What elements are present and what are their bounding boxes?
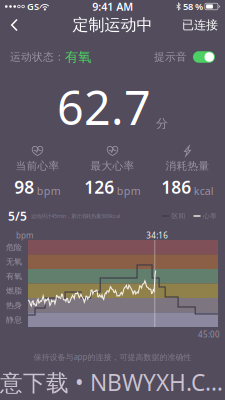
staticText: 有氧 <box>6 271 22 281</box>
staticText: 心率 <box>203 212 217 220</box>
staticText: 45:00 <box>198 329 220 340</box>
staticText: 提示音 <box>154 50 187 63</box>
staticText: 运动共计45min，累计消耗热量300kcal <box>31 212 120 220</box>
staticText: 定制运动中 <box>72 15 152 35</box>
staticText: 热身 <box>6 300 22 310</box>
staticText: GS <box>27 0 39 13</box>
staticText: 最大心率 <box>90 159 134 172</box>
button[interactable]: 已连接 <box>175 13 225 37</box>
staticText: 分 <box>156 116 168 131</box>
staticText: 126 <box>84 175 114 198</box>
staticText: 当前心率 <box>15 159 59 172</box>
staticText: bpm <box>37 184 61 198</box>
staticText: 保持设备与app的连接，可提高数据的准确性 <box>33 352 191 362</box>
staticText: 有氧 <box>65 49 91 65</box>
staticText: 静息 <box>6 315 22 325</box>
staticText: kcal <box>194 184 214 198</box>
staticText: 已连接 <box>182 18 218 32</box>
staticText: 98 <box>14 175 34 198</box>
staticText: 5/5 <box>8 208 27 224</box>
staticText: 区间 <box>171 212 185 220</box>
staticText: bpm <box>117 184 141 198</box>
staticText: 34:16 <box>146 230 168 241</box>
staticText: 9:41 AM <box>92 0 133 14</box>
button[interactable]: 提示音开关 <box>193 51 215 63</box>
staticText: 运动状态： <box>10 50 65 63</box>
staticText: 186 <box>161 175 191 198</box>
staticText: 消耗热量 <box>165 159 209 172</box>
staticText: 危险 <box>6 242 22 252</box>
staticText: 意下载 • NBWYXH.COM.C <box>0 367 225 397</box>
staticText: 62.7 <box>57 76 151 138</box>
staticText: 燃脂 <box>6 286 22 296</box>
staticText: 无氧 <box>6 257 22 267</box>
staticText: 58 % <box>183 0 203 13</box>
button[interactable]: 返回 <box>0 13 28 37</box>
staticText: bpm <box>16 230 33 241</box>
